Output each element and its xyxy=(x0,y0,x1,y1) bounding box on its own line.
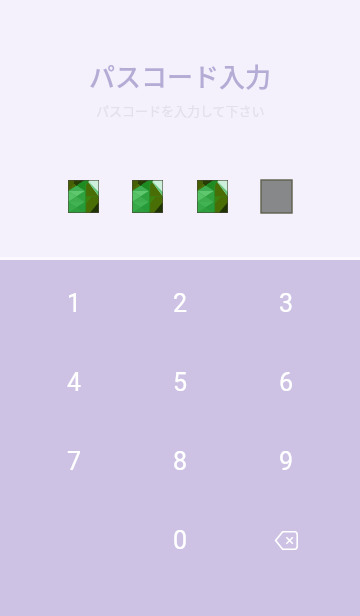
button[interactable]: 4 xyxy=(21,343,127,422)
staticText: 5 xyxy=(173,368,188,397)
staticText: 6 xyxy=(279,368,294,397)
staticText: 2 xyxy=(173,289,188,318)
staticText: 3 xyxy=(279,289,294,318)
button[interactable]: Backspace xyxy=(233,501,339,580)
button[interactable]: 7 xyxy=(21,422,127,501)
button[interactable]: 1 xyxy=(21,264,127,343)
staticText: パスコード入力 xyxy=(89,57,272,95)
button[interactable]: 0 xyxy=(127,501,233,580)
button[interactable]: 6 xyxy=(233,343,339,422)
staticText: 9 xyxy=(279,447,294,476)
button[interactable]: 3 xyxy=(233,264,339,343)
staticText: 0 xyxy=(173,526,188,555)
staticText: 7 xyxy=(67,447,82,476)
button[interactable]: 9 xyxy=(233,422,339,501)
button[interactable]: 2 xyxy=(127,264,233,343)
other: Backspace xyxy=(274,531,298,550)
staticText: 4 xyxy=(67,368,82,397)
staticText: パスコードを入力して下さい xyxy=(96,101,265,120)
staticText: 8 xyxy=(173,447,188,476)
staticText: 1 xyxy=(67,289,82,318)
button[interactable]: 8 xyxy=(127,422,233,501)
button[interactable]: 5 xyxy=(127,343,233,422)
